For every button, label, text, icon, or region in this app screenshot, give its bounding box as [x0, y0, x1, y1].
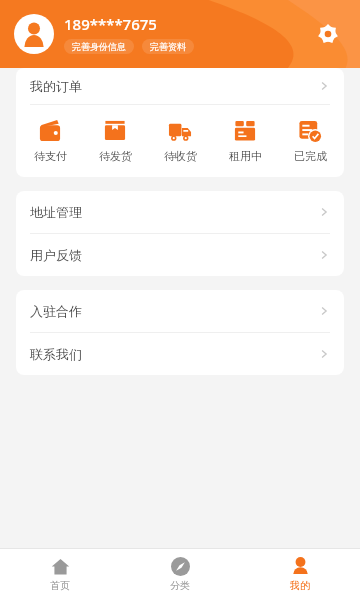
- button[interactable]: 用户反馈: [16, 234, 344, 276]
- button[interactable]: 联系我们: [16, 333, 344, 375]
- staticText: 用户反馈: [30, 247, 82, 263]
- staticText: 189****7675: [64, 14, 157, 34]
- button[interactable]: 待发货: [84, 117, 146, 165]
- button[interactable]: 我的订单: [16, 68, 344, 104]
- button[interactable]: Profile avatar: [14, 14, 54, 54]
- staticText: 待发货: [99, 149, 132, 163]
- button[interactable]: 待支付: [19, 117, 81, 165]
- staticText: 完善身份信息: [72, 41, 126, 52]
- button[interactable]: 待收货: [149, 117, 211, 165]
- staticText: 我的: [290, 579, 310, 592]
- staticText: 分类: [170, 579, 190, 592]
- button[interactable]: 租用中: [214, 117, 276, 165]
- staticText: 首页: [50, 579, 70, 592]
- staticText: 我的订单: [30, 78, 82, 94]
- button[interactable]: 我的: [240, 549, 360, 600]
- button[interactable]: 已完成: [279, 117, 341, 165]
- staticText: 租用中: [229, 149, 262, 163]
- button[interactable]: 分类: [120, 549, 240, 600]
- staticText: 已完成: [294, 149, 327, 163]
- button[interactable]: 首页: [0, 549, 120, 600]
- staticText: 地址管理: [30, 204, 82, 220]
- staticText: 完善资料: [150, 41, 186, 52]
- button[interactable]: 地址管理: [16, 191, 344, 233]
- button[interactable]: 完善身份信息: [64, 39, 134, 54]
- button[interactable]: 入驻合作: [16, 290, 344, 332]
- staticText: 待收货: [164, 149, 197, 163]
- staticText: 联系我们: [30, 346, 82, 362]
- button[interactable]: 完善资料: [142, 39, 194, 54]
- staticText: 入驻合作: [30, 303, 82, 319]
- staticText: 待支付: [34, 149, 67, 163]
- button[interactable]: Settings: [308, 14, 348, 54]
